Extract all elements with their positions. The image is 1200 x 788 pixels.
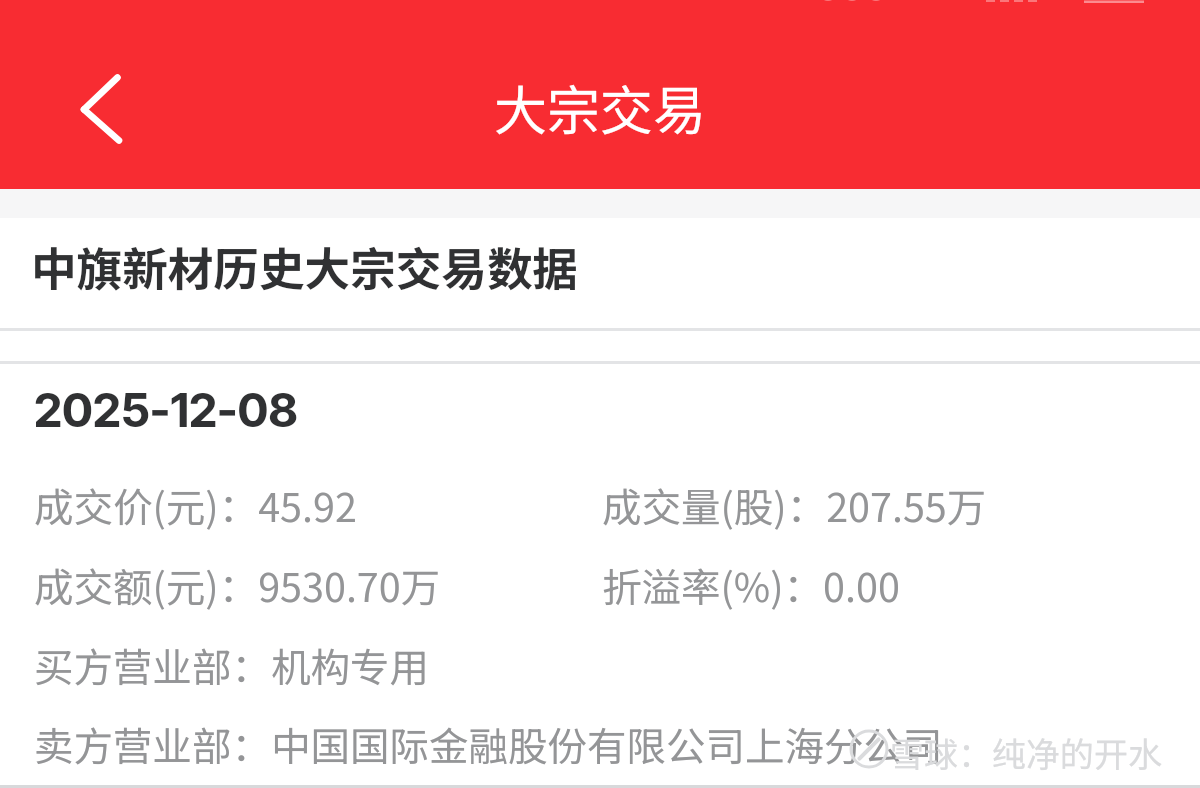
button[interactable]: 中旗新材历史大宗交易数据 (0, 218, 1200, 328)
staticText: 成交额(元)：9530.70万 (34, 556, 441, 613)
button[interactable]: Back (40, 54, 144, 164)
staticText: 中旗新材历史大宗交易数据 (31, 233, 579, 299)
button[interactable]: 2025-12-08 (0, 364, 1200, 785)
staticText: 折溢率(%)：0.00 (602, 556, 900, 613)
staticText: 成交量(股)：207.55万 (602, 476, 987, 533)
staticText: 雪球：纯净的开水 (890, 728, 1162, 777)
staticText: 成交价(元)：45.92 (34, 476, 357, 533)
staticText: 买方营业部：机构专用 (34, 636, 429, 693)
staticText: 卖方营业部：中国国际金融股份有限公司上海分公司 (34, 715, 943, 772)
staticText: 大宗交易 (0, 69, 1200, 146)
staticText: 2025-12-08 (34, 381, 299, 438)
